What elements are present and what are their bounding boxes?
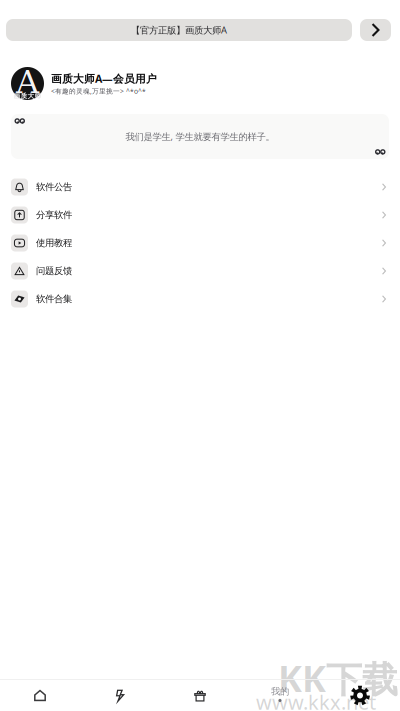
button[interactable]: 【官方正版】画质大师A (6, 19, 352, 41)
button[interactable]: 使用教程 (0, 229, 400, 257)
button[interactable]: 我的 (240, 680, 320, 711)
staticText: 问题反馈 (36, 265, 72, 277)
staticText: A (16, 63, 39, 101)
button[interactable]: 加速 (80, 680, 160, 711)
staticText: 画质大师A—会员用户 (51, 71, 157, 86)
button[interactable]: 软件合集 (0, 285, 400, 313)
button[interactable]: 展开 (360, 19, 391, 41)
button[interactable]: 问题反馈 (0, 257, 400, 285)
staticText: 分享软件 (36, 209, 72, 221)
staticText: 【官方正版】画质大师A (131, 24, 227, 36)
staticText: <有趣的灵魂,万里挑一> ^*o^* (51, 87, 146, 96)
button[interactable]: 首页 (0, 680, 80, 711)
button[interactable]: 设置 (320, 680, 400, 711)
button[interactable]: 软件公告 (0, 173, 400, 201)
staticText: 我的 (271, 686, 289, 697)
staticText: 使用教程 (36, 237, 72, 249)
staticText: 我们是学生, 学生就要有学生的样子。 (125, 130, 274, 143)
button[interactable]: 福利 (160, 680, 240, 711)
staticText: 画质大师 (13, 92, 41, 100)
staticText: KK下载 (278, 654, 398, 702)
staticText: 软件合集 (36, 293, 72, 305)
button[interactable]: 分享软件 (0, 201, 400, 229)
staticText: 软件公告 (36, 181, 72, 193)
staticText: www.kkx.net (256, 689, 376, 711)
